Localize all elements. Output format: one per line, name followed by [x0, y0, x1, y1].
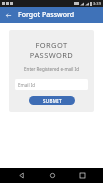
staticText: Enter Registered e-mail Id	[24, 66, 79, 72]
button[interactable]: Back	[11, 168, 31, 183]
button[interactable]: Email Id	[15, 79, 88, 90]
staticText: SUBMIT	[43, 98, 62, 104]
button[interactable]: Home	[42, 168, 62, 183]
button[interactable]: Recent apps	[72, 168, 92, 183]
staticText: 3:39	[93, 1, 101, 6]
button[interactable]: Back	[0, 7, 16, 23]
staticText: FORGOT PASSWORD	[15, 40, 88, 60]
staticText: Forgot Password	[18, 10, 75, 20]
button[interactable]: SUBMIT	[29, 96, 75, 105]
staticText: Email Id	[18, 82, 36, 88]
